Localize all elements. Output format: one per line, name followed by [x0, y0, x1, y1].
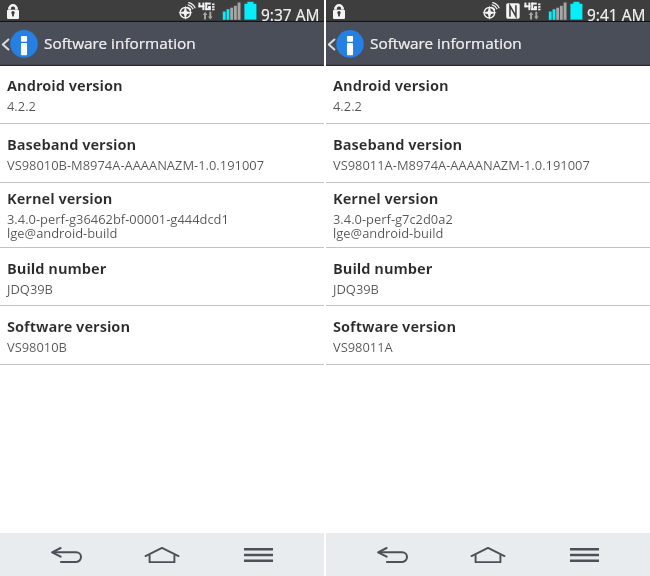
staticText: 4.2.2 [333, 97, 362, 115]
staticText: VS98010B-M8974A-AAAANAZM-1.0.191007 [7, 156, 265, 174]
button[interactable]: Home [114, 533, 210, 576]
staticText: Software information [370, 33, 522, 54]
staticText: Baseband version [7, 134, 137, 154]
button[interactable]: Software version [326, 306, 650, 364]
staticText: lge@android-build [333, 224, 444, 242]
button[interactable]: Menu [536, 533, 632, 576]
button[interactable]: Baseband version [326, 124, 650, 182]
button[interactable]: Build number [326, 248, 650, 305]
button[interactable]: Build number [0, 248, 324, 305]
button[interactable]: Android version [0, 66, 324, 123]
button[interactable]: Menu [210, 533, 306, 576]
button[interactable]: Baseband version [0, 124, 324, 182]
staticText: JDQ39B [7, 280, 53, 298]
button[interactable]: Back [0, 22, 324, 66]
staticText: Baseband version [333, 134, 463, 154]
staticText: JDQ39B [333, 280, 379, 298]
button[interactable]: Android version [326, 66, 650, 123]
button[interactable]: Back [326, 22, 650, 66]
button[interactable]: Kernel version [326, 183, 650, 247]
staticText: 3.4.0-perf-g36462bf-00001-g444dcd1 [7, 210, 229, 228]
staticText: Software version [333, 316, 456, 336]
staticText: 9:41 AM [587, 4, 646, 25]
staticText: Build number [7, 258, 107, 278]
staticText: Android version [333, 75, 449, 95]
staticText: Software information [44, 33, 196, 54]
staticText: 9:37 AM [261, 4, 320, 25]
staticText: Software version [7, 316, 130, 336]
staticText: Android version [7, 75, 123, 95]
staticText: Kernel version [333, 188, 439, 208]
staticText: VS98011A [333, 338, 393, 356]
staticText: lge@android-build [7, 224, 118, 242]
button[interactable]: Software version [0, 306, 324, 364]
staticText: VS98010B [7, 338, 67, 356]
staticText: 4.2.2 [7, 97, 36, 115]
button[interactable]: Back [344, 533, 440, 576]
staticText: 3.4.0-perf-g7c2d0a2 [333, 210, 453, 228]
button[interactable]: Home [440, 533, 536, 576]
staticText: Kernel version [7, 188, 113, 208]
button[interactable]: Back [18, 533, 114, 576]
button[interactable]: Kernel version [0, 183, 324, 247]
staticText: VS98011A-M8974A-AAAANAZM-1.0.191007 [333, 156, 590, 174]
staticText: Build number [333, 258, 433, 278]
